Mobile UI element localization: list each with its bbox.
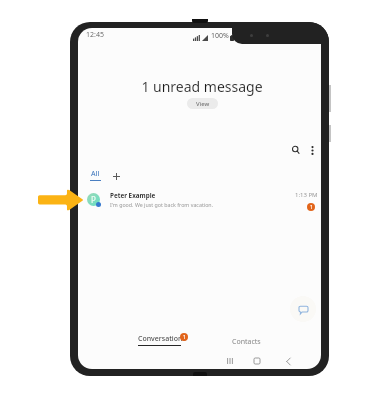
staticText: 1 [183, 334, 186, 341]
button[interactable]: Contacts [232, 337, 261, 347]
staticText: 100% [211, 31, 229, 41]
button[interactable]: All [89, 169, 102, 181]
staticText: Peter Example [110, 191, 156, 200]
button[interactable]: New conversation [290, 296, 316, 322]
staticText: P [91, 194, 96, 205]
staticText: All [91, 169, 100, 179]
button[interactable]: Search [287, 141, 305, 159]
staticText: Contacts [232, 337, 261, 347]
button[interactable]: View [187, 98, 218, 109]
button[interactable]: Add [109, 169, 123, 183]
staticText: 1 [310, 204, 313, 211]
staticText: 1 unread message [141, 77, 263, 96]
button[interactable]: Home [248, 352, 266, 369]
button[interactable]: Recents [221, 352, 239, 369]
staticText: Conversations [138, 334, 186, 344]
button[interactable]: P [78, 186, 321, 214]
staticText: 1:13 PM [295, 191, 318, 199]
button[interactable]: Back [279, 352, 297, 369]
staticText: View [196, 100, 210, 108]
button[interactable]: More options [303, 141, 321, 159]
button[interactable]: Conversations [138, 333, 186, 344]
staticText: 12:45 [86, 30, 104, 40]
staticText: I'm good. We just got back from vacation… [110, 201, 214, 208]
